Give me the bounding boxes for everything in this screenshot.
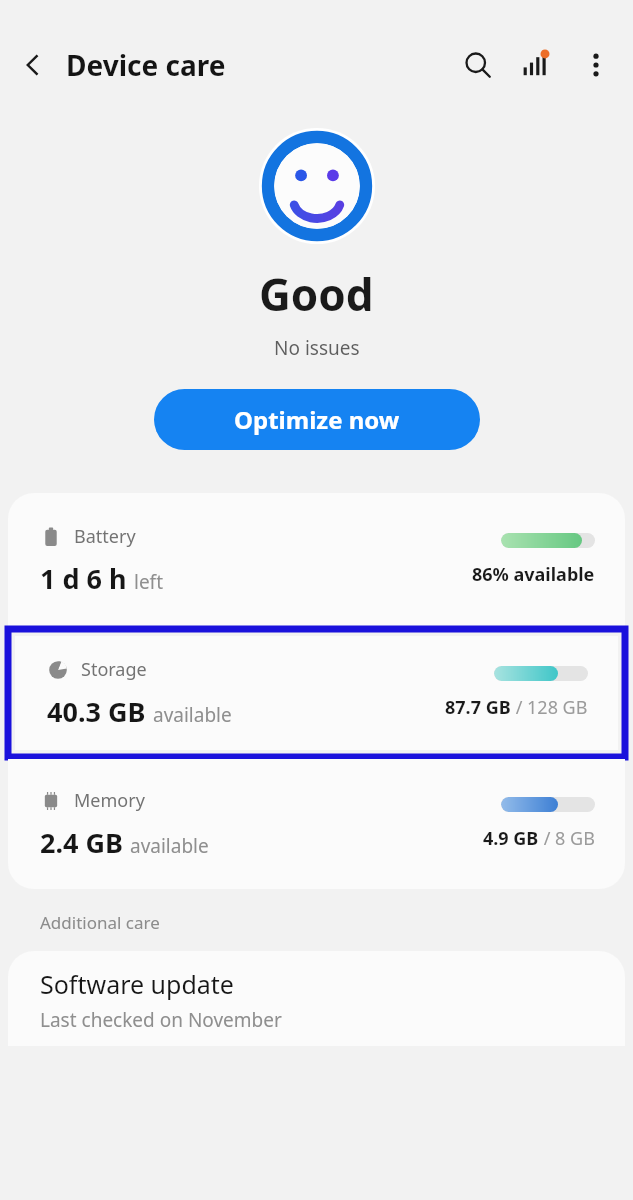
button[interactable]: Search [449,36,507,94]
staticText: 2.4 GB [40,824,123,861]
staticText: Battery [74,524,136,549]
staticText: Device care [66,46,226,84]
staticText: Last checked on November [40,1007,282,1033]
button[interactable]: Storage [15,636,618,750]
button[interactable]: Software update [8,951,625,1046]
button[interactable]: Optimize now [154,389,480,450]
staticText: Good [259,264,374,324]
staticText: No issues [274,335,360,361]
staticText: Software update [40,967,234,1001]
staticText: / 8 GB [539,826,595,851]
button[interactable]: Memory [8,759,625,889]
staticText: / 128 GB [511,695,588,720]
button[interactable]: Back [0,34,66,96]
button[interactable]: More options [565,34,627,96]
staticText: 40.3 GB [47,693,146,730]
button[interactable]: Diagnostics [507,36,565,94]
staticText: Optimize now [234,403,400,436]
staticText: 4.9 GB [483,826,539,851]
button[interactable]: Battery [8,493,625,627]
staticText: 1 d 6 h [40,560,127,597]
staticText: available [153,702,232,728]
staticText: Additional care [40,911,160,934]
staticText: Storage [81,657,147,682]
staticText: left [134,569,164,595]
staticText: 86% available [472,562,595,587]
staticText: 87.7 GB [445,695,511,720]
staticText: available [130,833,209,859]
staticText: Memory [74,788,145,813]
